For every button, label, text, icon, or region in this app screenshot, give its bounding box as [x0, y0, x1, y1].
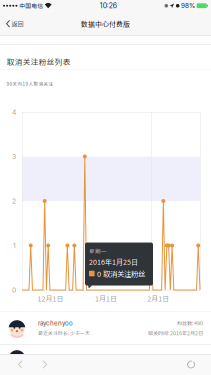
staticText: 12月1日	[37, 293, 63, 303]
staticText: 1月1日	[95, 293, 117, 303]
staticText: 取关时间: 2016年2月2日	[148, 329, 203, 337]
staticText: 2月1日	[147, 293, 169, 303]
staticText: 最近关注时长: 少于一天	[38, 329, 90, 336]
staticText: 数据中心付费版	[81, 19, 130, 29]
staticText: raychenyoo	[38, 320, 73, 327]
staticText: 4	[12, 108, 16, 116]
staticText: 10:26	[100, 2, 117, 10]
button[interactable]: Back	[8, 355, 33, 374]
staticText: 3	[12, 152, 16, 161]
staticText: 2016年1月25日	[89, 256, 138, 267]
staticText: 0	[12, 286, 16, 294]
staticText: 98%	[181, 2, 195, 10]
staticText: 粉丝数: 490	[177, 319, 203, 327]
staticText: 取消关注粉丝列表	[7, 56, 71, 67]
button[interactable]: Forward	[33, 355, 57, 374]
staticText: 2	[12, 197, 16, 205]
staticText: 返回	[12, 19, 24, 28]
staticText: 中国电信	[19, 1, 43, 10]
staticText: 0 取消关注粉丝	[97, 268, 145, 279]
button[interactable]: Reload	[179, 355, 203, 374]
staticText: 90天内19人取消关注	[6, 80, 53, 87]
staticText: 1	[13, 241, 16, 250]
button[interactable]: raychenyoo	[0, 311, 211, 344]
staticText: 星期一	[89, 247, 107, 255]
button[interactable]: 返回	[0, 12, 30, 36]
